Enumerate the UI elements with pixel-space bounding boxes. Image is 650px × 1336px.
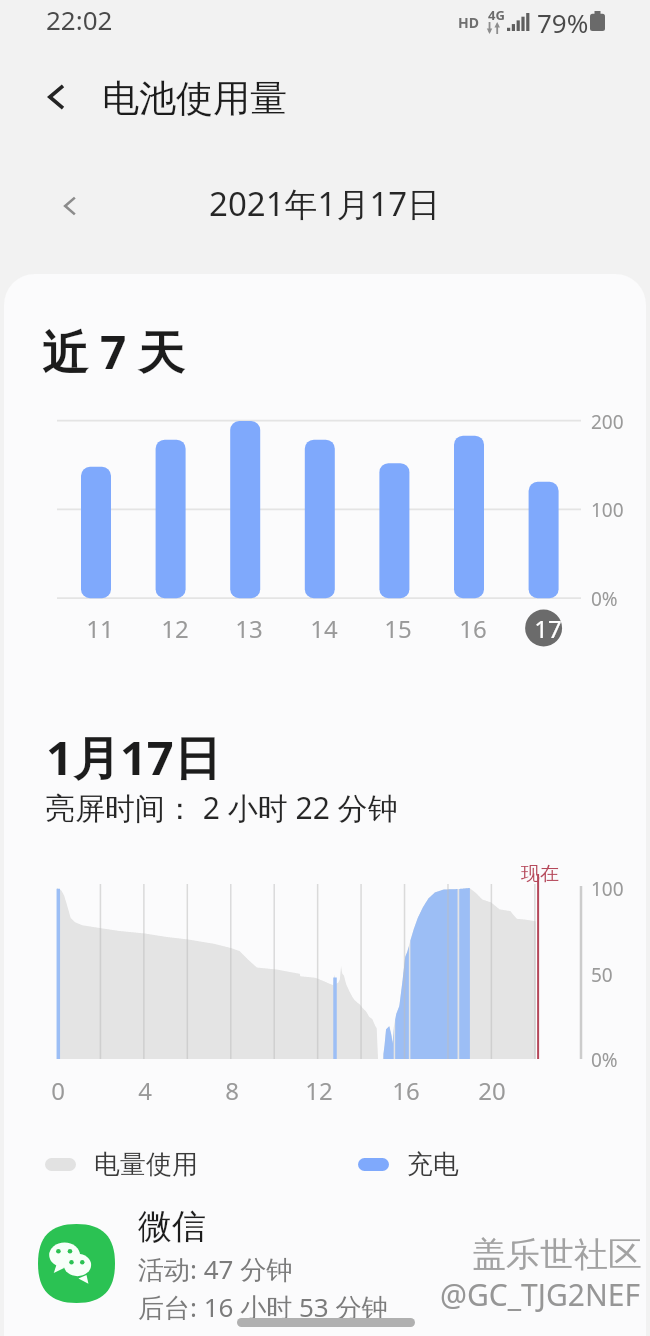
- staticText: 1月17日: [46, 725, 221, 789]
- staticText: 14: [302, 612, 346, 645]
- staticText: 22:02: [46, 2, 113, 37]
- staticText: 12: [153, 612, 197, 645]
- button[interactable]: Day 14: [288, 415, 352, 653]
- staticText: 16: [451, 612, 495, 645]
- staticText: 0%: [591, 586, 618, 612]
- button[interactable]: Day 11: [64, 415, 128, 653]
- button[interactable]: Back: [34, 74, 80, 120]
- staticText: 2021年1月17日: [209, 181, 441, 226]
- staticText: 20: [470, 1074, 514, 1107]
- button[interactable]: Day 12: [139, 415, 203, 653]
- button[interactable]: Day 17: [512, 415, 576, 653]
- staticText: 12: [297, 1074, 341, 1107]
- staticText: 8: [210, 1074, 254, 1107]
- staticText: 电池使用量: [102, 75, 287, 122]
- staticText: 盖乐世社区: [472, 1233, 642, 1276]
- staticText: 15: [376, 612, 420, 645]
- staticText: 现在: [521, 862, 559, 886]
- button[interactable]: Day 16: [437, 415, 501, 653]
- staticText: 13: [227, 612, 271, 645]
- staticText: HD: [458, 13, 479, 32]
- button[interactable]: Previous day: [50, 186, 90, 226]
- staticText: 充电: [407, 1148, 459, 1181]
- staticText: 4: [123, 1074, 167, 1107]
- staticText: 100: [591, 497, 624, 523]
- staticText: 16: [384, 1074, 428, 1107]
- staticText: 200: [591, 409, 624, 435]
- button[interactable]: 微信: [4, 1205, 646, 1333]
- staticText: 11: [78, 612, 122, 645]
- staticText: 亮屏时间： 2 小时 22 分钟: [45, 787, 398, 828]
- button[interactable]: Day 13: [213, 415, 277, 653]
- staticText: 4G: [488, 6, 505, 24]
- button[interactable]: 电量使用: [45, 1146, 459, 1182]
- staticText: 79%: [537, 5, 589, 40]
- staticText: 电量使用: [94, 1148, 198, 1181]
- staticText: 17: [526, 612, 570, 645]
- staticText: 活动: 47 分钟: [138, 1251, 293, 1287]
- staticText: 50: [591, 962, 613, 988]
- staticText: 0%: [591, 1047, 618, 1073]
- button[interactable]: Day 15: [362, 415, 426, 653]
- staticText: 0: [36, 1074, 80, 1107]
- staticText: 100: [591, 876, 624, 902]
- staticText: 后台: 16 小时 53 分钟: [138, 1289, 388, 1325]
- staticText: @GC_TJG2NEF: [440, 1274, 641, 1315]
- staticText: 近 7 天: [42, 320, 185, 383]
- staticText: 微信: [138, 1205, 206, 1248]
